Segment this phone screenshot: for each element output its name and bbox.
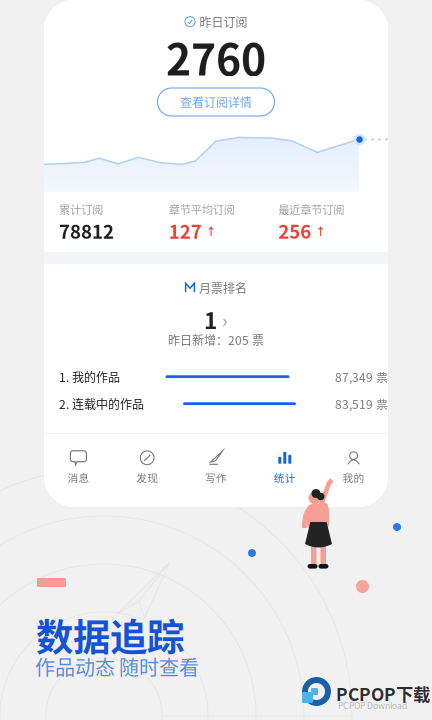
- staticText: 昨日新增：205 票: [168, 331, 264, 348]
- staticText: 昨日订阅: [199, 13, 247, 30]
- staticText: PCPOP Download: [338, 699, 407, 711]
- staticText: 统计: [274, 470, 296, 485]
- staticText: 消息: [67, 470, 89, 485]
- staticText: 78812: [59, 217, 114, 244]
- staticText: ↑: [206, 223, 217, 238]
- staticText: ↑: [315, 223, 326, 238]
- staticText: 查看订阅详情: [180, 93, 252, 111]
- staticText: 章节平均订阅: [169, 201, 235, 217]
- staticText: 1: [204, 303, 217, 336]
- staticText: 256: [278, 217, 311, 244]
- staticText: 87,349 票: [335, 368, 388, 385]
- button[interactable]: 统计: [250, 445, 319, 490]
- staticText: ›: [222, 306, 228, 333]
- button[interactable]: 消息: [44, 445, 113, 490]
- staticText: 累计订阅: [59, 201, 103, 217]
- staticText: 最近章节订阅: [278, 201, 344, 217]
- button[interactable]: 写作: [182, 445, 250, 490]
- staticText: 2760: [166, 26, 266, 88]
- button[interactable]: 发现: [113, 445, 182, 490]
- button[interactable]: 我的: [319, 445, 388, 490]
- staticText: 我的: [343, 470, 365, 485]
- staticText: 2. 连载中的作品: [59, 395, 144, 412]
- staticText: 数据追踪: [36, 608, 184, 662]
- staticText: 127: [169, 217, 202, 244]
- staticText: 83,519 票: [335, 395, 388, 412]
- staticText: PCPOP下载: [336, 681, 430, 706]
- button[interactable]: 查看订阅详情: [157, 88, 274, 116]
- staticText: 作品动态 随时查看: [35, 652, 199, 681]
- staticText: 1. 我的作品: [59, 368, 120, 385]
- staticText: 写作: [205, 470, 227, 485]
- staticText: 月票排名: [199, 279, 247, 296]
- staticText: 发现: [136, 470, 158, 485]
